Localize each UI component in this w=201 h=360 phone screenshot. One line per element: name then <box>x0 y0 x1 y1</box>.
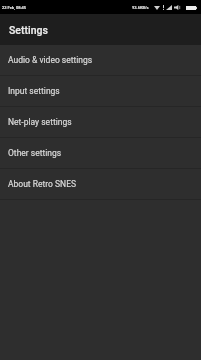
staticText: 23 Feb, 08:45 <box>2 5 27 10</box>
button[interactable]: Input settings <box>0 76 201 107</box>
other: Volume <box>174 5 181 10</box>
other: Alert <box>163 5 164 10</box>
staticText: Other settings <box>8 148 62 158</box>
other: Mobile signal <box>166 5 172 10</box>
staticText: 93.6KB/s <box>132 5 149 10</box>
staticText: Net-play settings <box>8 117 72 127</box>
staticText: Audio & video settings <box>8 55 93 65</box>
button[interactable]: Audio & video settings <box>0 45 201 76</box>
other: Wi-Fi <box>154 5 160 10</box>
button[interactable]: Other settings <box>0 138 201 169</box>
staticText: About Retro SNES <box>8 179 77 189</box>
staticText: Settings <box>9 24 48 36</box>
other: Battery <box>186 6 197 10</box>
staticText: Input settings <box>8 86 60 96</box>
button[interactable]: Net-play settings <box>0 107 201 138</box>
button[interactable]: About Retro SNES <box>0 169 201 200</box>
